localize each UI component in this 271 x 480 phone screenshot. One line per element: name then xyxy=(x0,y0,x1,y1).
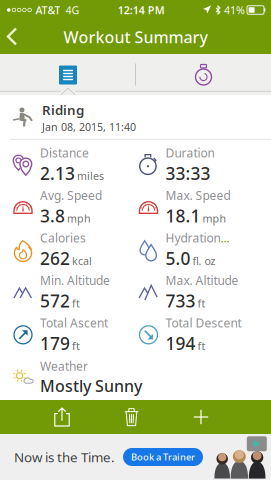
button[interactable]: Back xyxy=(0,21,25,52)
staticText: 572 xyxy=(40,289,70,312)
staticText: mph xyxy=(202,211,226,225)
staticText: Weather xyxy=(40,358,88,374)
staticText: 194 xyxy=(165,332,195,355)
staticText: Workout Summary xyxy=(63,26,207,48)
staticText: Max. Altitude xyxy=(165,272,238,288)
staticText: 179 xyxy=(40,332,70,355)
button[interactable]: Book a Trainer xyxy=(123,448,203,466)
staticText: 262 xyxy=(40,247,70,270)
staticText: 12:14 PM xyxy=(118,3,165,17)
staticText: Total Ascent xyxy=(40,315,108,331)
staticText: ... xyxy=(220,230,229,246)
staticText: ft xyxy=(197,296,205,310)
staticText: 3.8 xyxy=(40,204,65,227)
staticText: 5.0 xyxy=(165,247,190,270)
staticText: fl. oz xyxy=(192,254,215,268)
staticText: Duration xyxy=(165,145,214,161)
staticText: 4G xyxy=(65,3,79,17)
staticText: Book a Trainer xyxy=(131,451,195,463)
button[interactable]: Summary xyxy=(0,55,136,95)
staticText: Total Descent xyxy=(165,315,241,331)
staticText: AT&T xyxy=(35,3,60,17)
staticText: ft xyxy=(72,296,80,310)
staticText: Riding xyxy=(42,101,84,119)
staticText: 2.13 xyxy=(40,162,75,185)
staticText: ft xyxy=(72,339,80,353)
button[interactable]: Add xyxy=(179,400,223,434)
staticText: kcal xyxy=(72,254,92,268)
staticText: Max. Speed xyxy=(165,187,230,203)
staticText: 41% xyxy=(224,3,245,17)
staticText: Jan 08, 2015, 11:40 xyxy=(42,120,136,134)
staticText: 733 xyxy=(165,289,195,312)
staticText: ft xyxy=(197,339,205,353)
button[interactable]: Laps xyxy=(136,55,271,95)
staticText: Min. Altitude xyxy=(40,272,110,288)
staticText: Calories xyxy=(40,230,86,246)
staticText: miles xyxy=(77,169,104,183)
staticText: Now is the Time. xyxy=(14,448,115,466)
button[interactable]: Delete xyxy=(109,400,153,434)
staticText: mph xyxy=(67,211,91,225)
staticText: Hydration xyxy=(165,230,220,246)
staticText: Mostly Sunny xyxy=(40,375,142,396)
staticText: Distance xyxy=(40,145,89,161)
staticText: Avg. Speed xyxy=(40,187,102,203)
staticText: 33:33 xyxy=(165,162,210,185)
button[interactable]: Share xyxy=(40,400,84,434)
staticText: 18.1 xyxy=(165,204,200,227)
